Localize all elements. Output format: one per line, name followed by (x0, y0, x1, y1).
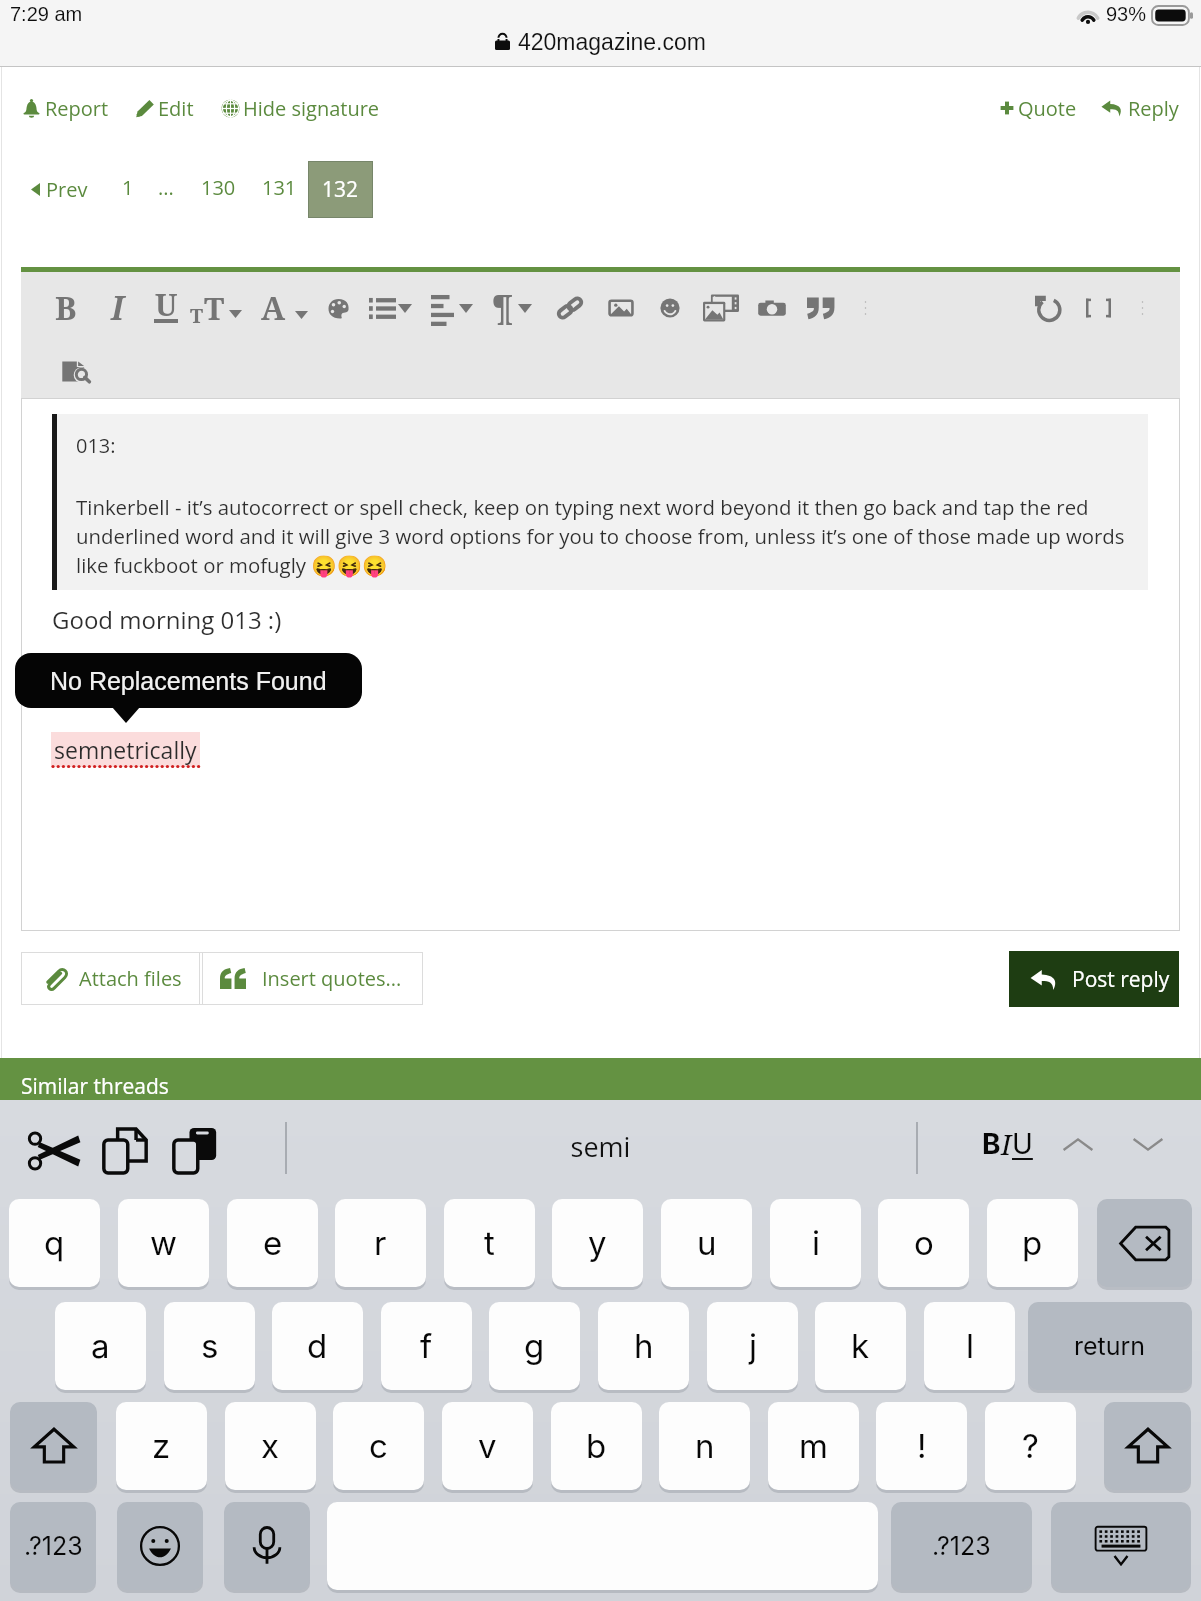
button[interactable]: Paste (164, 1120, 226, 1182)
staticText: T (204, 287, 225, 329)
button[interactable]: n (659, 1402, 750, 1490)
button[interactable]: q (9, 1199, 100, 1287)
button[interactable]: B (41, 283, 91, 333)
button[interactable]: u (661, 1199, 752, 1287)
button[interactable]: key (1051, 1502, 1191, 1590)
staticText: u (697, 1223, 717, 1263)
button[interactable]: b (551, 1402, 642, 1490)
button[interactable]: key (224, 1502, 310, 1590)
button[interactable]: o (878, 1199, 969, 1287)
button[interactable]: Paragraph (478, 283, 528, 333)
button[interactable]: List (357, 283, 407, 333)
button[interactable]: ... (158, 174, 174, 201)
staticText: B (982, 1127, 1001, 1161)
button[interactable]: No Replacements Found (15, 653, 362, 708)
button[interactable]: Preview (50, 346, 100, 396)
button[interactable]: w (118, 1199, 209, 1287)
button[interactable]: a (55, 1302, 146, 1390)
button[interactable]: Copy (94, 1120, 156, 1182)
button[interactable]: t (444, 1199, 535, 1287)
button[interactable]: ! (876, 1402, 967, 1490)
button[interactable]: m (768, 1402, 859, 1490)
button[interactable]: k (815, 1302, 906, 1390)
staticText: x (261, 1426, 280, 1466)
button[interactable]: Hide signature (220, 92, 380, 124)
button[interactable]: Next field (1122, 1118, 1174, 1170)
button[interactable]: Reply (1101, 92, 1179, 124)
button[interactable]: 131 (262, 174, 297, 201)
staticText: T (190, 302, 204, 329)
button[interactable]: p (987, 1199, 1078, 1287)
button[interactable]: Previous field (1052, 1118, 1104, 1170)
staticText: Prev (46, 176, 88, 203)
button[interactable]: Cut (24, 1120, 86, 1182)
button[interactable]: y (552, 1199, 643, 1287)
button[interactable]: Insert quotes... (199, 952, 423, 1005)
staticText: semi (0, 1128, 1201, 1165)
button[interactable]: e (227, 1199, 318, 1287)
staticText: i (812, 1223, 820, 1263)
button[interactable]: I (92, 283, 142, 333)
button[interactable]: l (924, 1302, 1015, 1390)
staticText: o (914, 1223, 934, 1263)
button[interactable]: key (117, 1502, 203, 1590)
button[interactable]: c (333, 1402, 424, 1490)
button[interactable]: B (982, 1124, 1033, 1164)
button[interactable]: Highlight (313, 283, 363, 333)
button[interactable]: j (707, 1302, 798, 1390)
staticText: U (1012, 1127, 1033, 1161)
button[interactable]: 132 (308, 161, 373, 218)
button[interactable]: Similar threads (0, 1058, 1201, 1100)
button[interactable]: key (10, 1402, 97, 1490)
staticText: Edit (158, 95, 194, 122)
button[interactable]: Quote (796, 283, 846, 333)
button[interactable]: Post reply (1009, 951, 1179, 1007)
button[interactable]: d (272, 1302, 363, 1390)
button[interactable]: Align (418, 283, 468, 333)
button[interactable]: Prev (31, 173, 88, 205)
button[interactable]: i (770, 1199, 861, 1287)
staticText: I (1001, 1125, 1012, 1163)
button[interactable]: Undo (1023, 283, 1073, 333)
button[interactable]: key (1097, 1199, 1192, 1287)
button[interactable]: 130 (201, 174, 236, 201)
button[interactable]: Smilies (645, 283, 695, 333)
button[interactable]: v (442, 1402, 533, 1490)
button[interactable]: s (164, 1302, 255, 1390)
button[interactable]: f (381, 1302, 472, 1390)
button[interactable]: z (116, 1402, 207, 1490)
button[interactable]: x (225, 1402, 316, 1490)
button[interactable]: .?123 (891, 1502, 1032, 1590)
button[interactable]: r (335, 1199, 426, 1287)
staticText: Attach files (79, 965, 182, 992)
staticText: a (91, 1326, 110, 1366)
button[interactable]: Font size (190, 283, 250, 333)
staticText: z (152, 1426, 171, 1466)
staticText: q (44, 1223, 65, 1263)
button[interactable]: g (489, 1302, 580, 1390)
staticText: h (634, 1326, 654, 1366)
button[interactable]: Underline (141, 283, 191, 333)
button[interactable]: Image (596, 283, 646, 333)
button[interactable]: Code (1073, 283, 1123, 333)
staticText: Tinkerbell - it’s autocorrect or spell c… (76, 493, 1125, 579)
button[interactable]: Edit (134, 92, 194, 124)
button[interactable]: return (1028, 1302, 1192, 1390)
staticText: .?123 (24, 1531, 83, 1561)
button[interactable]: Text colour (261, 283, 321, 333)
button[interactable]: 1 (122, 174, 134, 201)
button[interactable]: ? (985, 1402, 1076, 1490)
staticText: m (799, 1426, 828, 1466)
button[interactable]: .?123 (10, 1502, 96, 1590)
button[interactable]: Camera (747, 283, 797, 333)
button[interactable]: key (1104, 1402, 1191, 1490)
button[interactable]: Attach files (21, 952, 203, 1005)
button[interactable]: Report (22, 92, 109, 124)
button[interactable]: Link (545, 283, 595, 333)
button[interactable]: Quote (997, 92, 1077, 124)
button[interactable]: h (598, 1302, 689, 1390)
button[interactable]: Media (696, 283, 746, 333)
